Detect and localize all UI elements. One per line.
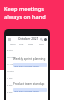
- staticText: MON: [10, 43, 16, 46]
- button[interactable]: Menu: [7, 37, 12, 42]
- button[interactable]: MON: [8, 43, 17, 48]
- staticText: 10 AM: [7, 56, 14, 59]
- staticText: October 2021: [18, 37, 39, 41]
- staticText: 9 AM: [7, 49, 13, 52]
- button[interactable]: THU: [36, 43, 46, 48]
- staticText: Join with Google Meet: [14, 89, 39, 92]
- staticText: 3 PM: [7, 91, 13, 94]
- button[interactable]: Product team standup: [13, 82, 47, 92]
- staticText: Weekly sprint planning: [13, 57, 46, 61]
- staticText: 11 AM: [7, 63, 14, 66]
- staticText: always on hand: [4, 13, 46, 21]
- staticText: Keep meetings: [4, 5, 44, 13]
- button[interactable]: TUE: [17, 43, 26, 48]
- staticText: Product team standup: [13, 82, 45, 86]
- staticText: WED: [28, 43, 34, 46]
- staticText: THU: [39, 43, 44, 46]
- button[interactable]: Search: [39, 37, 44, 42]
- button[interactable]: Account: [44, 37, 47, 42]
- staticText: 2 PM: [7, 84, 13, 87]
- staticText: TUE: [19, 43, 24, 46]
- button[interactable]: Weekly sprint planning: [13, 57, 47, 67]
- staticText: Join with Google Meet: [14, 64, 39, 67]
- staticText: 1 PM: [7, 77, 13, 80]
- button[interactable]: WED: [26, 43, 36, 48]
- staticText: 12 PM: [7, 70, 14, 73]
